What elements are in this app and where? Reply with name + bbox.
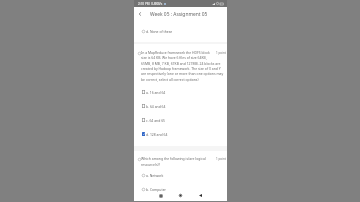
button[interactable]: Home xyxy=(176,191,185,200)
button[interactable]: Back xyxy=(135,7,144,21)
staticText: 1 point xyxy=(216,157,226,161)
button[interactable]: a. Network xyxy=(134,168,227,182)
staticText: In a MapReduce framework the HDFS block xyxy=(141,50,210,55)
staticText: d. 128 and 64 xyxy=(146,132,168,137)
staticText: are respectively (one or more than one o… xyxy=(141,71,224,76)
button[interactable]: d. None of these xyxy=(134,24,227,38)
button[interactable]: b. 64 and 64 xyxy=(134,99,227,113)
button[interactable]: a. 16 and 64 xyxy=(134,85,227,99)
staticText: created by Hadoop framework. The size of… xyxy=(141,66,221,71)
staticText: 1 point xyxy=(216,51,226,55)
staticText: resource(s)? xyxy=(141,162,161,167)
staticText: Which among the following is/are logical xyxy=(141,156,206,161)
staticText: 65MB, 8 MB, 7 KB, 67KB and 127MB. 24 blo… xyxy=(141,61,221,66)
staticText: d. None of these xyxy=(146,29,173,34)
staticText: b. 64 and 64 xyxy=(146,104,166,109)
button[interactable]: d. 128 and 64 xyxy=(134,127,227,141)
staticText: Week 05 : Assignment 05 xyxy=(150,11,208,18)
button[interactable]: Back xyxy=(196,191,205,200)
staticText: a. Network xyxy=(146,173,164,178)
staticText: 2:10 PM 0.8KB/s xyxy=(138,2,163,6)
staticText: be correct, select all correct options) xyxy=(141,77,199,82)
staticText: b. Computer xyxy=(146,187,166,192)
button[interactable]: Recents xyxy=(156,191,165,200)
staticText: a. 16 and 64 xyxy=(146,90,166,95)
button[interactable]: c. 64 and 65 xyxy=(134,113,227,127)
staticText: size is 64 KB. We have 6 files of size 6… xyxy=(141,55,207,60)
staticText: c. 64 and 65 xyxy=(146,118,166,123)
button[interactable]: b. Computer xyxy=(134,182,227,196)
